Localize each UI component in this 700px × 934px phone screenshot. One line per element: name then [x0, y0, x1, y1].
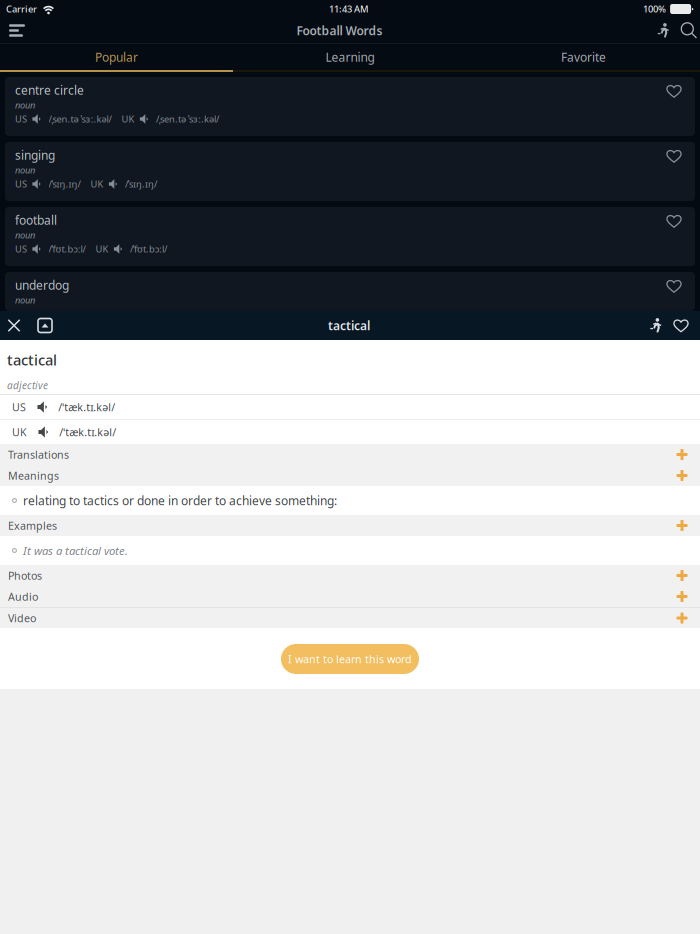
button[interactable]: Search	[678, 18, 700, 43]
staticText: tactical	[7, 350, 57, 369]
button[interactable]: Video	[0, 608, 700, 628]
button[interactable]: Audio	[0, 586, 700, 607]
staticText: /ˈtæk.tɪ.kəl/	[58, 400, 115, 414]
staticText: Audio	[8, 589, 38, 604]
button[interactable]: Favorite	[467, 44, 700, 70]
button[interactable]: Translations	[0, 444, 700, 465]
staticText: Carrier	[6, 3, 37, 15]
staticText: singing	[15, 147, 55, 163]
button[interactable]: Photos	[0, 565, 700, 586]
button[interactable]: Close	[0, 311, 25, 340]
button[interactable]: singing	[5, 142, 695, 201]
staticText: underdog	[15, 277, 69, 293]
staticText: Meanings	[8, 468, 59, 483]
staticText: football	[15, 212, 57, 228]
staticText: /ˈfʊt.bɔːl/	[48, 243, 85, 255]
staticText: UK	[12, 425, 27, 439]
button[interactable]: US	[0, 395, 700, 419]
staticText: Learning	[325, 49, 374, 65]
staticText: I want to learn this word	[288, 652, 412, 666]
button[interactable]: UK	[0, 420, 700, 444]
button[interactable]: Meanings	[0, 465, 700, 486]
staticText: 100%	[643, 3, 666, 15]
button[interactable]: Favorite	[668, 311, 700, 340]
staticText: Translations	[8, 447, 69, 462]
button[interactable]: Examples	[0, 515, 700, 536]
staticText: adjective	[7, 378, 48, 392]
staticText: US	[15, 243, 27, 255]
staticText: noun	[15, 164, 35, 176]
staticText: /ˈsɪŋ.ɪŋ/	[125, 178, 157, 190]
staticText: tactical	[328, 317, 370, 333]
staticText: Photos	[8, 568, 42, 583]
button[interactable]: Learning	[233, 44, 467, 70]
staticText: /ˈsɪŋ.ɪŋ/	[48, 178, 80, 190]
staticText: UK	[90, 178, 103, 190]
button[interactable]: Expand	[25, 311, 56, 340]
staticText: US	[15, 113, 27, 125]
staticText: noun	[15, 294, 35, 306]
button[interactable]: centre circle	[5, 77, 695, 136]
staticText: US	[12, 400, 26, 414]
staticText: centre circle	[15, 82, 84, 98]
button[interactable]: I want to learn this word	[281, 644, 419, 674]
staticText: Examples	[8, 518, 57, 533]
staticText: relating to tactics or done in order to …	[23, 492, 337, 508]
staticText: noun	[15, 229, 35, 241]
staticText: US	[15, 178, 27, 190]
staticText: It was a tactical vote.	[23, 543, 128, 558]
staticText: /ˈtæk.tɪ.kəl/	[59, 425, 116, 439]
staticText: UK	[95, 243, 108, 255]
staticText: /ˌsen.tə ˈsɜː.kəl/	[156, 113, 219, 125]
button[interactable]: Practice	[642, 311, 668, 340]
staticText: 11:43 AM	[329, 3, 369, 15]
staticText: /ˌsen.tə ˈsɜː.kəl/	[48, 113, 111, 125]
button[interactable]: football	[5, 207, 695, 266]
staticText: Popular	[95, 49, 138, 65]
staticText: Favorite	[561, 49, 606, 65]
staticText: Video	[8, 611, 36, 625]
staticText: Football Words	[296, 22, 382, 38]
button[interactable]: Practice	[647, 18, 678, 43]
staticText: /ˈfʊt.bɔːl/	[130, 243, 167, 255]
button[interactable]: Menu	[0, 18, 32, 42]
staticText: UK	[121, 113, 134, 125]
staticText: noun	[15, 99, 35, 111]
button[interactable]: Popular	[0, 44, 233, 70]
button[interactable]: underdog	[5, 272, 695, 311]
